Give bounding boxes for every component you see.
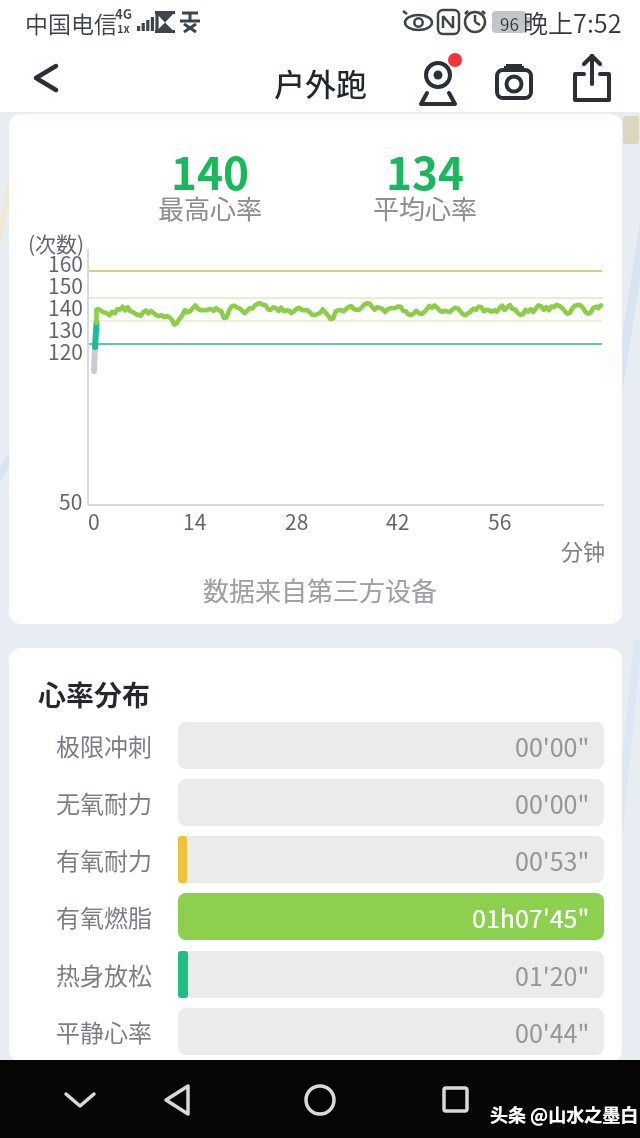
button[interactable] — [562, 48, 622, 108]
staticText: 50 — [59, 486, 83, 510]
staticText: 有氧耐力 — [56, 842, 152, 877]
staticText: 有氧燃脂 — [56, 899, 152, 934]
staticText: 00'44" — [515, 1014, 590, 1050]
button[interactable] — [423, 1068, 487, 1132]
staticText: 01'20" — [515, 957, 590, 993]
staticText: 热身放松 — [56, 957, 152, 992]
staticText: 00'53" — [515, 842, 590, 878]
staticText: 01h07'45" — [472, 899, 590, 935]
staticText: (次数) — [28, 228, 85, 252]
staticText: 无氧耐力 — [56, 785, 152, 820]
button[interactable] — [18, 50, 76, 108]
button[interactable] — [146, 1068, 210, 1132]
staticText: 140 — [171, 139, 249, 187]
staticText: 心率分布 — [38, 674, 151, 704]
staticText: 14 — [183, 506, 207, 530]
staticText: 134 — [386, 139, 464, 187]
staticText: 160 — [48, 248, 83, 272]
staticText: 数据来自第三方设备 — [203, 571, 438, 599]
staticText: 平静心率 — [56, 1014, 152, 1049]
staticText: 130 — [48, 314, 83, 338]
staticText: 4G — [115, 4, 132, 22]
staticText: 28 — [285, 506, 309, 530]
staticText: 0 — [88, 506, 100, 530]
button[interactable] — [408, 48, 468, 108]
button[interactable] — [484, 48, 544, 108]
button[interactable] — [48, 1068, 112, 1132]
button[interactable] — [288, 1068, 352, 1132]
staticText: 00'00" — [515, 785, 590, 821]
staticText: 150 — [48, 270, 83, 294]
staticText: 分钟 — [561, 534, 606, 558]
staticText: 1x — [117, 20, 130, 36]
staticText: 户外跑 — [274, 60, 367, 98]
staticText: 96 — [500, 11, 519, 33]
staticText: 极限冲刺 — [56, 728, 152, 763]
staticText: 56 — [488, 506, 512, 530]
staticText: 最高心率 — [158, 189, 263, 217]
staticText: 中国电信 — [25, 6, 117, 39]
staticText: 00'00" — [515, 728, 590, 764]
staticText: 平均心率 — [373, 189, 478, 217]
staticText: 头条 @山水之墨白 — [490, 1101, 627, 1127]
staticText: 120 — [48, 336, 83, 360]
staticText: 140 — [48, 292, 83, 316]
staticText: 晚上7:52 — [523, 4, 622, 40]
staticText: 42 — [386, 506, 410, 530]
